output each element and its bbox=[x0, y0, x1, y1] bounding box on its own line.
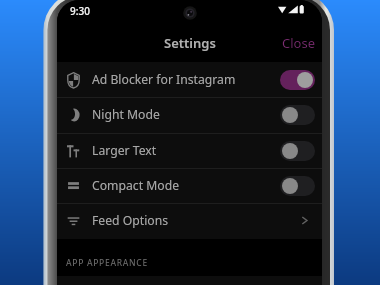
staticText: Larger Text bbox=[92, 142, 157, 159]
staticText: Ad Blocker for Instagram bbox=[92, 71, 236, 88]
button[interactable]: Larger Text bbox=[57, 133, 322, 168]
other: Open Feed Options bbox=[299, 215, 310, 226]
staticText: Settings bbox=[164, 34, 216, 52]
staticText: Feed Options bbox=[92, 212, 169, 229]
staticText: Night Mode bbox=[92, 106, 160, 123]
button[interactable]: Toggle off bbox=[280, 141, 315, 161]
button[interactable]: Toggle off bbox=[280, 105, 315, 125]
button[interactable]: Toggle off bbox=[280, 176, 315, 196]
button[interactable]: Compact Mode bbox=[57, 168, 322, 203]
staticText: Compact Mode bbox=[92, 177, 180, 194]
other: Status icons bbox=[278, 5, 306, 14]
button[interactable]: Ad Blocker for Instagram bbox=[57, 62, 322, 97]
button[interactable]: Night Mode bbox=[57, 97, 322, 132]
button[interactable]: Close bbox=[275, 28, 322, 58]
staticText: 9:30 bbox=[70, 4, 90, 18]
staticText: Close bbox=[282, 34, 315, 52]
button[interactable]: Feed Options bbox=[57, 203, 322, 238]
staticText: APP APPEARANCE bbox=[66, 257, 148, 269]
button[interactable]: Toggle on bbox=[280, 70, 315, 90]
